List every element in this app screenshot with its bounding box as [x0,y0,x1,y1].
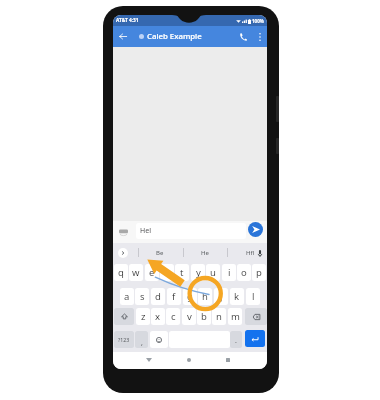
staticText: f [172,290,176,303]
button[interactable]: f [167,288,181,305]
button[interactable]: e [145,264,159,281]
button[interactable]: l [246,288,260,305]
staticText: u [210,266,216,279]
staticText: ?123 [118,336,130,343]
staticText: m [231,310,240,323]
staticText: p [256,266,262,279]
button[interactable]: Recents [219,352,237,368]
button[interactable]: Hfl [228,243,267,263]
button[interactable]: j [214,288,228,305]
staticText: o [241,266,247,279]
button[interactable]: Be [138,243,182,263]
button[interactable]: Voice input [254,243,266,263]
staticText: w [132,266,140,279]
button[interactable]: h [198,288,212,305]
staticText: j [220,290,223,303]
button[interactable]: b [197,308,211,325]
button[interactable]: Home [180,352,198,368]
button[interactable]: k [230,288,244,305]
staticText: v [187,310,192,323]
staticText: AT&T 4:31 [116,17,139,24]
staticText: . [235,336,237,346]
staticText: g [187,290,193,303]
staticText: Be [156,249,164,257]
button[interactable]: a [120,288,134,305]
button[interactable]: m [228,308,242,325]
button[interactable]: t [175,264,189,281]
button[interactable]: Symbols [114,331,134,348]
staticText: q [118,266,124,279]
staticText: s [140,290,145,303]
staticText: h [202,290,208,303]
button[interactable]: y [191,264,205,281]
staticText: Hfl [246,249,255,257]
button[interactable]: Expand suggestions [118,248,128,258]
button[interactable]: c [166,308,180,325]
button[interactable]: Call [235,26,251,47]
staticText: b [201,310,207,323]
button[interactable]: Send [248,222,263,237]
button[interactable]: Shift [114,308,134,325]
button[interactable]: Enter [245,330,265,347]
staticText: , [141,338,143,348]
staticText: i [228,266,231,279]
button[interactable]: Back [114,26,132,47]
button[interactable]: Attach [119,228,128,236]
button[interactable]: More options [254,26,266,47]
staticText: x [155,310,161,323]
button[interactable]: n [212,308,226,325]
staticText: e [149,266,155,279]
staticText: y [196,266,201,279]
staticText: t [180,266,184,279]
button[interactable]: i [222,264,236,281]
staticText: 100% [252,18,264,24]
button[interactable]: He [183,243,227,263]
button[interactable]: p [252,264,266,281]
staticText: c [171,310,176,323]
button[interactable]: w [129,264,143,281]
staticText: a [124,290,130,303]
button[interactable]: u [206,264,220,281]
button[interactable]: q [114,264,128,281]
staticText: Hel [140,226,151,236]
button[interactable]: Back [140,352,158,368]
button[interactable]: s [135,288,149,305]
button[interactable]: Period [230,331,242,348]
button[interactable]: v [182,308,196,325]
staticText: Caleb Example [147,31,202,42]
button[interactable]: g [183,288,197,305]
staticText: r [165,266,169,279]
button[interactable]: Hel [136,223,246,239]
button[interactable]: r [160,264,174,281]
button[interactable]: o [237,264,251,281]
button[interactable]: Emoji [150,331,168,348]
button[interactable]: Comma [135,331,148,348]
staticText: l [252,290,255,303]
button[interactable]: Backspace [245,308,267,325]
staticText: z [141,310,146,323]
button[interactable]: z [136,308,150,325]
staticText: He [201,249,209,257]
staticText: n [216,310,222,323]
button[interactable]: x [151,308,165,325]
button[interactable]: d [151,288,165,305]
staticText: k [234,290,240,303]
staticText: d [155,290,161,303]
